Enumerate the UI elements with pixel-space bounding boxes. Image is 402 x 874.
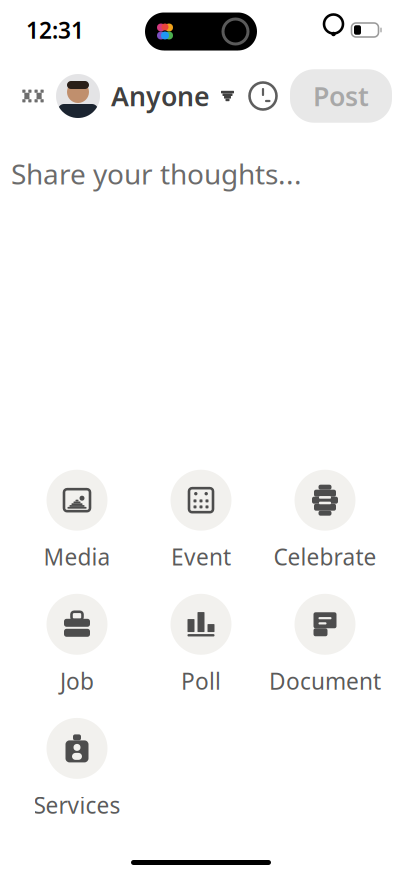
staticText: Document — [269, 666, 381, 696]
button[interactable]: Document — [263, 594, 387, 696]
staticText: Post — [313, 78, 369, 114]
button[interactable]: Poll — [139, 594, 263, 696]
button[interactable]: Celebrate — [263, 470, 387, 572]
staticText: Poll — [181, 666, 221, 696]
staticText: Services — [33, 790, 120, 820]
button[interactable]: Schedule post — [240, 73, 286, 119]
staticText: 12:31 — [26, 15, 84, 45]
button[interactable]: Media — [15, 470, 139, 572]
button[interactable]: Services — [15, 718, 139, 820]
button[interactable]: Post — [290, 69, 392, 123]
button[interactable]: Event — [139, 470, 263, 572]
staticText: Anyone — [111, 78, 210, 114]
staticText: Share your thoughts... — [11, 155, 302, 192]
staticText: Job — [60, 666, 94, 696]
staticText: Celebrate — [273, 542, 376, 572]
staticText: Event — [171, 542, 231, 572]
button[interactable]: Job — [15, 594, 139, 696]
button[interactable]: Close — [10, 73, 56, 119]
staticText: Media — [43, 542, 110, 572]
button[interactable]: Anyone — [56, 69, 234, 123]
